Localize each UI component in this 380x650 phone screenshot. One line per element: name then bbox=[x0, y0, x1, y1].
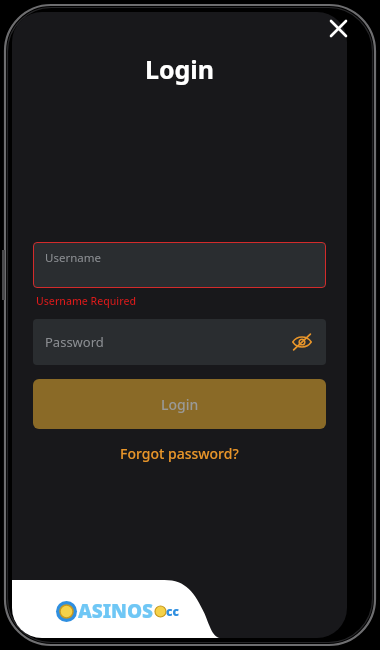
button[interactable]: Password bbox=[33, 319, 326, 365]
button[interactable]: Casinos.cc logo bbox=[56, 598, 179, 624]
button[interactable]: Show password bbox=[286, 326, 318, 358]
button[interactable]: Forgot password? bbox=[12, 444, 347, 463]
button[interactable]: Username bbox=[33, 242, 326, 288]
staticText: Login bbox=[12, 52, 347, 86]
staticText: Username bbox=[45, 250, 101, 266]
staticText: Username Required bbox=[36, 294, 136, 308]
staticText: Login bbox=[161, 395, 199, 414]
button[interactable]: Login bbox=[33, 379, 326, 429]
staticText: Forgot password? bbox=[120, 444, 239, 463]
button[interactable]: Close bbox=[322, 12, 354, 44]
staticText: cc bbox=[166, 603, 179, 619]
staticText: Password bbox=[45, 333, 104, 351]
staticText: ASINOS bbox=[78, 598, 154, 624]
